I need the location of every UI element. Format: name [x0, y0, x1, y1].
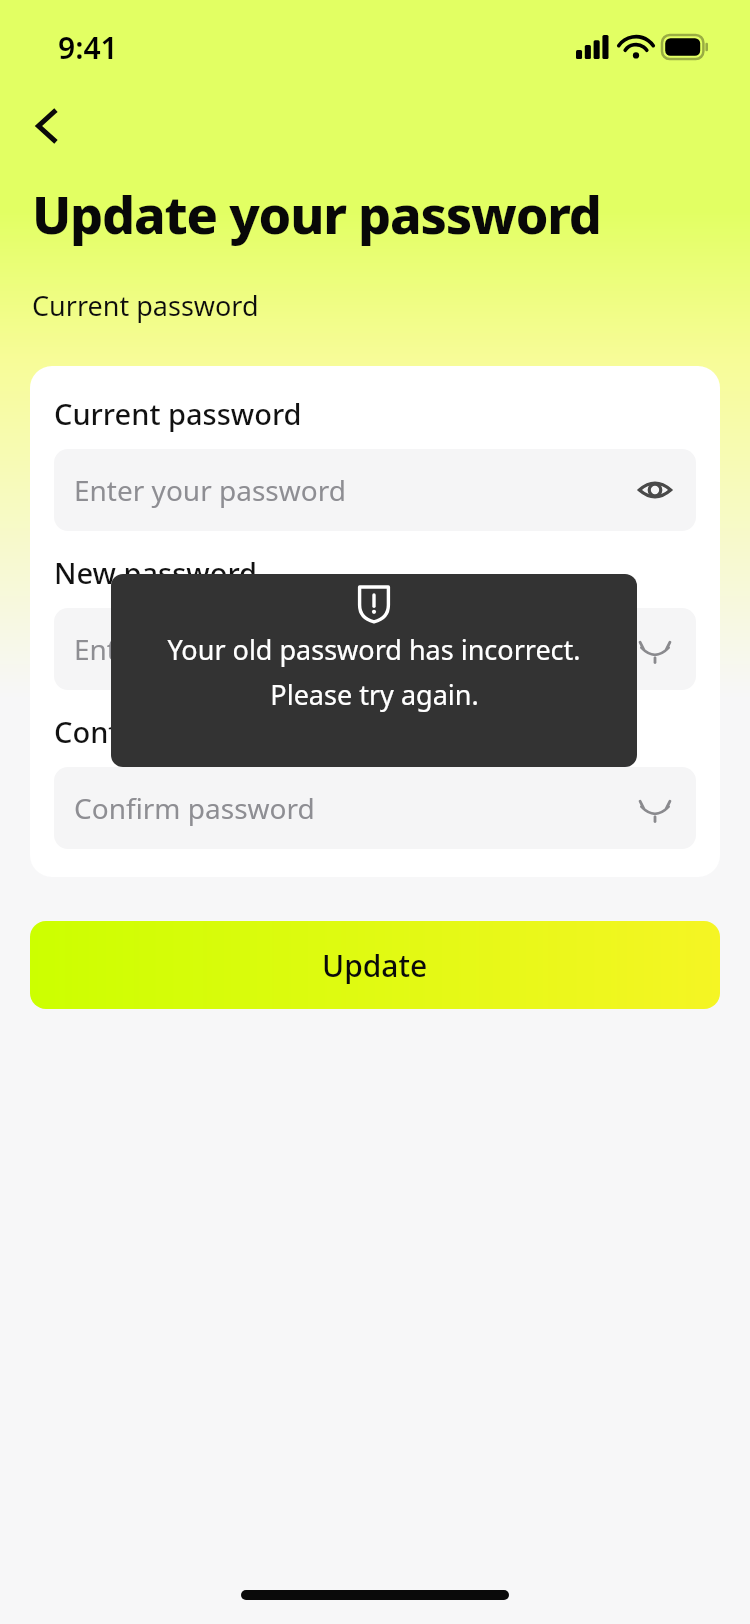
button[interactable]: Update: [30, 921, 720, 1009]
button[interactable]: Enter your password: [54, 449, 696, 531]
staticText: New password: [54, 553, 258, 592]
button[interactable]: Show password: [634, 628, 676, 670]
staticText: Update your password: [32, 178, 601, 249]
button[interactable]: Confirm password: [54, 767, 696, 849]
staticText: Current password: [54, 394, 302, 433]
staticText: Confirm password: [74, 789, 634, 827]
staticText: Confirm password: [54, 712, 308, 751]
staticText: Your old password has incorrect.: [167, 631, 581, 668]
staticText: Current password: [32, 287, 259, 324]
button[interactable]: Show password: [634, 787, 676, 829]
staticText: Enter your password: [74, 471, 634, 509]
button[interactable]: Hide password: [634, 469, 676, 511]
button[interactable]: Back: [18, 96, 78, 156]
staticText: Enter new password: [74, 630, 634, 668]
button[interactable]: Enter new password: [54, 608, 696, 690]
staticText: Update: [322, 945, 428, 986]
staticText: 9:41: [58, 27, 118, 68]
staticText: Please try again.: [270, 676, 479, 713]
